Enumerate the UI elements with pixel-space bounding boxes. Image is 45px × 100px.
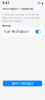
staticText: Choose how you want to be notified about… <box>2 13 39 22</box>
staticText: Save Changes <box>12 82 33 85</box>
staticText: ‹ <box>1 6 2 11</box>
staticText: ıll ▮ <box>37 1 42 5</box>
button[interactable]: Back <box>1 6 3 11</box>
staticText: 9:41 <box>2 1 9 5</box>
button[interactable]: Push Notifications <box>0 28 45 36</box>
staticText: Alerts <box>2 24 10 27</box>
staticText: Push Notifications <box>4 30 29 33</box>
staticText: Notification Preferences <box>3 7 33 10</box>
button[interactable]: Save Changes <box>3 81 42 86</box>
